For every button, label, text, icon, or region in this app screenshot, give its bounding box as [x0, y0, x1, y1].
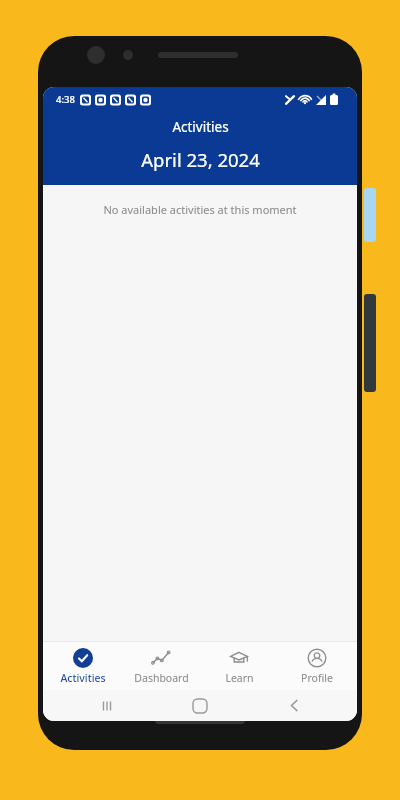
staticText: 4:38 [56, 93, 75, 106]
button[interactable]: Profile [279, 642, 355, 690]
button[interactable]: Recent apps [77, 690, 137, 721]
button[interactable]: Activities [45, 642, 121, 690]
button[interactable]: Learn [201, 642, 277, 690]
staticText: No available activities at this moment [103, 202, 297, 217]
button[interactable]: Dashboard [123, 642, 199, 690]
button[interactable]: Back [264, 690, 324, 721]
staticText: Learn [225, 671, 254, 685]
staticText: April 23, 2024 [141, 147, 260, 172]
staticText: Activities [172, 118, 229, 136]
staticText: Profile [301, 671, 333, 685]
staticText: Dashboard [134, 671, 189, 685]
staticText: Activities [60, 671, 106, 685]
button[interactable]: Home [170, 690, 230, 721]
